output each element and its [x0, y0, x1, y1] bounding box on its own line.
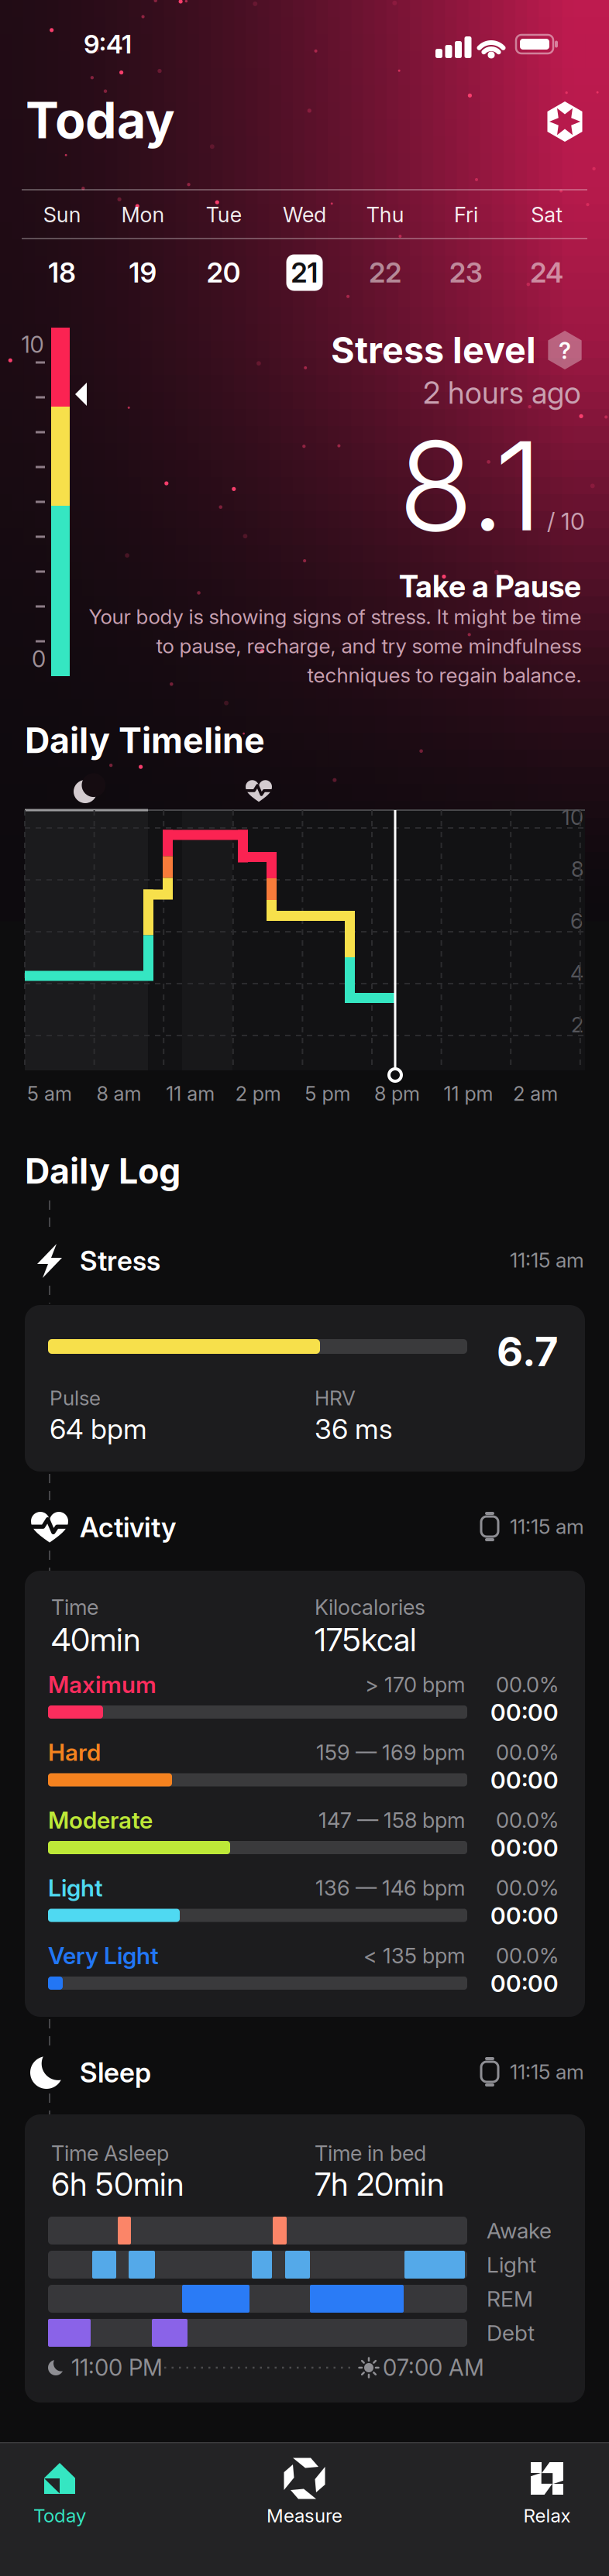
staticText: 00:00 — [490, 1902, 559, 1930]
staticText: Activity — [80, 1511, 176, 1544]
staticText: Sat — [531, 202, 563, 227]
staticText: Time in bed — [315, 2140, 426, 2166]
button[interactable]: 21 — [277, 249, 332, 296]
staticText: Daily Log — [25, 1150, 181, 1192]
staticText: 00:00 — [490, 1834, 559, 1862]
staticText: 00.0% — [496, 1875, 559, 1901]
staticText: Sun — [43, 202, 81, 227]
staticText: Time Asleep — [51, 2140, 169, 2166]
staticText: 7h 20min — [315, 2165, 445, 2203]
staticText: 18 — [48, 256, 76, 289]
button[interactable]: 22 — [358, 249, 412, 296]
staticText: Measure — [267, 2504, 342, 2527]
staticText: 8 am — [97, 1082, 141, 1106]
staticText: Tue — [206, 202, 242, 227]
staticText: 6.7 — [497, 1327, 559, 1376]
staticText: 11:00 PM — [71, 2354, 163, 2381]
staticText: 175kcal — [315, 1620, 417, 1659]
staticText: 11:15 am — [510, 1248, 584, 1272]
staticText: 00.0% — [496, 1943, 559, 1968]
staticText: Today — [33, 2504, 86, 2527]
staticText: Relax — [523, 2504, 571, 2527]
button[interactable]: 18 — [35, 249, 89, 296]
staticText: 5 pm — [305, 1082, 351, 1106]
staticText: Stress level — [331, 328, 536, 372]
button[interactable]: Time Asleep — [25, 2114, 585, 2403]
staticText: 10 — [562, 804, 583, 830]
staticText: Pulse — [50, 1386, 101, 1410]
staticText: 2 hours ago — [423, 374, 581, 411]
staticText: Time — [51, 1594, 98, 1620]
staticText: 2 pm — [235, 1082, 281, 1106]
staticText: Take a Pause — [399, 568, 581, 605]
staticText: Daily Timeline — [25, 719, 265, 761]
staticText: 159 — 169 bpm — [316, 1740, 465, 1765]
staticText: Very Light — [48, 1942, 159, 1970]
staticText: < 135 bpm — [363, 1943, 465, 1968]
staticText: 8 pm — [374, 1082, 420, 1106]
staticText: Moderate — [48, 1806, 153, 1834]
staticText: 11 am — [166, 1082, 215, 1106]
staticText: 10 — [21, 331, 44, 358]
staticText: 23 — [449, 256, 483, 289]
staticText: 00:00 — [490, 1969, 559, 1998]
staticText: 36 ms — [315, 1412, 393, 1446]
staticText: Thu — [366, 202, 404, 227]
button[interactable]: 24 — [520, 249, 574, 296]
button[interactable]: 6.7 — [25, 1305, 585, 1472]
staticText: Your body is showing signs of stress. It… — [88, 604, 581, 687]
staticText: 6h 50min — [51, 2165, 184, 2203]
button[interactable]: 23 — [439, 249, 493, 296]
staticText: 00.0% — [496, 1807, 559, 1833]
staticText: REM — [487, 2285, 533, 2312]
button[interactable]: About stress level — [545, 330, 585, 370]
staticText: 147 — 158 bpm — [318, 1807, 465, 1833]
staticText: 6 — [570, 908, 583, 934]
staticText: HRV — [315, 1386, 356, 1410]
staticText: 22 — [369, 256, 402, 289]
staticText: 11:15 am — [510, 2059, 584, 2084]
staticText: Light — [48, 1874, 103, 1902]
staticText: 2 — [571, 1012, 583, 1037]
staticText: Stress — [80, 1244, 160, 1277]
staticText: Sleep — [80, 2056, 151, 2089]
staticText: 8 — [571, 856, 583, 882]
staticText: 2 am — [513, 1082, 558, 1106]
button[interactable]: 19 — [116, 249, 170, 296]
staticText: > 170 bpm — [365, 1672, 465, 1697]
staticText: 5 am — [27, 1082, 72, 1106]
staticText: Hard — [48, 1738, 101, 1766]
staticText: 64 bpm — [50, 1412, 147, 1446]
staticText: Wed — [283, 202, 326, 227]
button[interactable]: Time — [25, 1571, 585, 2017]
staticText: 00:00 — [490, 1698, 559, 1727]
button[interactable]: Welltory — [542, 98, 588, 145]
staticText: 11 pm — [444, 1082, 493, 1106]
staticText: 0 — [32, 645, 46, 673]
button[interactable]: Today — [0, 2443, 129, 2536]
staticText: 20 — [207, 256, 241, 289]
button[interactable]: 20 — [197, 249, 251, 296]
staticText: 00:00 — [490, 1766, 559, 1794]
staticText: 4 — [570, 960, 583, 985]
staticText: 24 — [530, 256, 564, 289]
staticText: Kilocalories — [315, 1594, 425, 1620]
staticText: 11:15 am — [510, 1514, 584, 1539]
staticText: Today — [26, 90, 175, 150]
staticText: / 10 — [547, 507, 585, 535]
staticText: Mon — [121, 202, 165, 227]
staticText: 136 — 146 bpm — [315, 1875, 465, 1901]
staticText: 00.0% — [496, 1672, 559, 1697]
staticText: 8.1 — [398, 411, 542, 560]
staticText: 9:41 — [84, 29, 132, 60]
staticText: Debt — [487, 2320, 535, 2346]
button[interactable]: Relax — [477, 2443, 609, 2536]
staticText: 07:00 AM — [383, 2354, 484, 2381]
staticText: Light — [487, 2251, 536, 2278]
staticText: Fri — [454, 202, 478, 227]
staticText: Maximum — [48, 1670, 157, 1699]
button[interactable]: Measure — [235, 2443, 374, 2536]
staticText: 19 — [129, 256, 157, 289]
staticText: 00.0% — [496, 1740, 559, 1765]
staticText: ? — [559, 337, 571, 364]
